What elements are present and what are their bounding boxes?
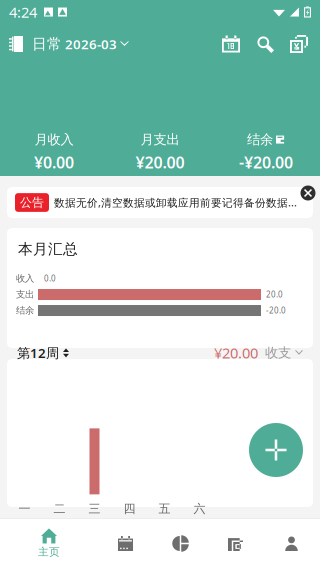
staticText: -¥20.00 bbox=[239, 152, 293, 173]
staticText: 五 bbox=[158, 501, 170, 516]
staticText: 结余 bbox=[16, 305, 34, 316]
staticText: 日常 bbox=[32, 35, 62, 53]
staticText: 月收入 bbox=[34, 131, 73, 148]
staticText: 收入 bbox=[16, 273, 34, 284]
staticText: 结余 bbox=[247, 131, 273, 148]
staticText: 20.0 bbox=[266, 289, 283, 300]
staticText: ¥0.00 bbox=[34, 152, 74, 173]
button[interactable]: 第12周 bbox=[17, 344, 69, 362]
staticText: 四 bbox=[123, 501, 135, 516]
staticText: 公告 bbox=[20, 195, 44, 210]
button[interactable]: Dismiss announcement bbox=[298, 183, 318, 203]
staticText: -20.0 bbox=[266, 305, 286, 316]
button[interactable]: Charts bbox=[153, 519, 208, 568]
staticText: 0.0 bbox=[44, 273, 56, 284]
staticText: 2026-03 bbox=[65, 35, 117, 53]
button[interactable]: 主页 bbox=[0, 519, 98, 568]
staticText: 三 bbox=[88, 501, 100, 516]
staticText: 支出 bbox=[16, 289, 34, 300]
staticText: 收支 bbox=[265, 345, 291, 361]
staticText: ¥20.00 bbox=[214, 343, 258, 363]
staticText: 二 bbox=[53, 501, 65, 516]
staticText: 数据无价,清空数据或卸载应用前要记得备份数据哦 bbox=[54, 195, 297, 210]
staticText: 第12周 bbox=[17, 344, 59, 362]
button[interactable]: Calendar bbox=[219, 31, 243, 57]
staticText: 本月汇总 bbox=[18, 240, 78, 258]
staticText: 4:24 bbox=[9, 2, 37, 22]
button[interactable]: Add record bbox=[249, 423, 303, 477]
button[interactable]: 日常 bbox=[9, 26, 129, 62]
staticText: ¥20.00 bbox=[135, 152, 184, 173]
button[interactable]: Profile bbox=[263, 519, 320, 568]
staticText: 主页 bbox=[38, 545, 60, 558]
button[interactable]: Search bbox=[253, 31, 277, 57]
button[interactable]: Accounts bbox=[287, 31, 311, 57]
staticText: 一 bbox=[18, 501, 30, 516]
button[interactable]: ¥20.00 bbox=[214, 343, 303, 363]
staticText: 月支出 bbox=[140, 131, 179, 148]
button[interactable]: Accounts bbox=[208, 519, 263, 568]
button[interactable]: Calendar bbox=[98, 519, 153, 568]
staticText: 六 bbox=[193, 501, 205, 516]
